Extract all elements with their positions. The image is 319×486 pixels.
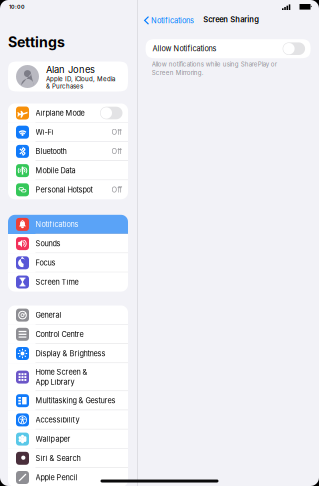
button[interactable]: Home Screen & — [8, 363, 128, 391]
staticText: App Library — [35, 378, 74, 387]
button[interactable]: Accessibility — [8, 410, 128, 429]
staticText: Wi-Fi — [35, 128, 53, 137]
staticText: Alan Jones — [46, 64, 95, 75]
staticText: Sounds — [35, 239, 60, 248]
staticText: Screen Mirroring. — [152, 69, 204, 76]
staticText: Multitasking & Gestures — [35, 396, 115, 405]
staticText: Screen Sharing — [203, 15, 259, 24]
staticText: Focus — [35, 258, 55, 267]
button[interactable]: Airplane Mode — [8, 103, 128, 123]
staticText: Control Centre — [35, 330, 83, 339]
staticText: Off — [111, 128, 122, 137]
button[interactable]: Display & Brightness — [8, 344, 128, 363]
staticText: Allow notifications while using SharePla… — [152, 60, 277, 68]
staticText: Allow Notifications — [153, 44, 217, 53]
staticText: Mobile Data — [35, 166, 75, 175]
staticText: 10:00 — [9, 3, 25, 10]
button[interactable]: Notifications — [144, 14, 194, 26]
staticText: General — [35, 311, 61, 320]
staticText: Settings — [8, 33, 65, 51]
button[interactable]: Mobile Data — [8, 161, 128, 180]
button[interactable]: Sounds — [8, 234, 128, 253]
staticText: & Purchases — [46, 83, 83, 90]
button[interactable]: Wi-Fi — [8, 123, 128, 142]
button[interactable]: Apple Pencil — [8, 468, 128, 486]
staticText: Home Screen & — [35, 368, 87, 376]
staticText: Wallpaper — [35, 435, 70, 444]
staticText: Off — [111, 147, 122, 156]
staticText: Notifications — [35, 220, 78, 229]
staticText: Off — [111, 185, 122, 194]
button[interactable]: Personal Hotspot — [8, 180, 128, 199]
button[interactable]: Wallpaper — [8, 429, 128, 449]
button[interactable]: Allow Notifications — [146, 39, 311, 58]
staticText: Airplane Mode — [35, 109, 84, 117]
button[interactable]: General — [8, 305, 128, 325]
staticText: Screen Time — [35, 278, 78, 286]
button[interactable]: Alan Jones — [8, 61, 128, 91]
button[interactable]: Focus — [8, 253, 128, 272]
staticText: Apple ID, iCloud, Media — [46, 75, 115, 83]
button[interactable]: Control Centre — [8, 325, 128, 344]
button[interactable]: Multitasking & Gestures — [8, 391, 128, 410]
staticText: Notifications — [151, 16, 194, 25]
button[interactable]: Notifications — [8, 215, 128, 234]
button[interactable]: Screen Time — [8, 272, 128, 292]
button[interactable]: Bluetooth — [8, 142, 128, 161]
staticText: Apple Pencil — [35, 473, 77, 482]
staticText: Display & Brightness — [35, 349, 105, 358]
staticText: Siri & Search — [35, 454, 80, 463]
button[interactable]: Siri & Search — [8, 449, 128, 468]
staticText: Bluetooth — [35, 147, 66, 156]
staticText: Accessibility — [35, 415, 79, 424]
staticText: Personal Hotspot — [35, 185, 92, 194]
